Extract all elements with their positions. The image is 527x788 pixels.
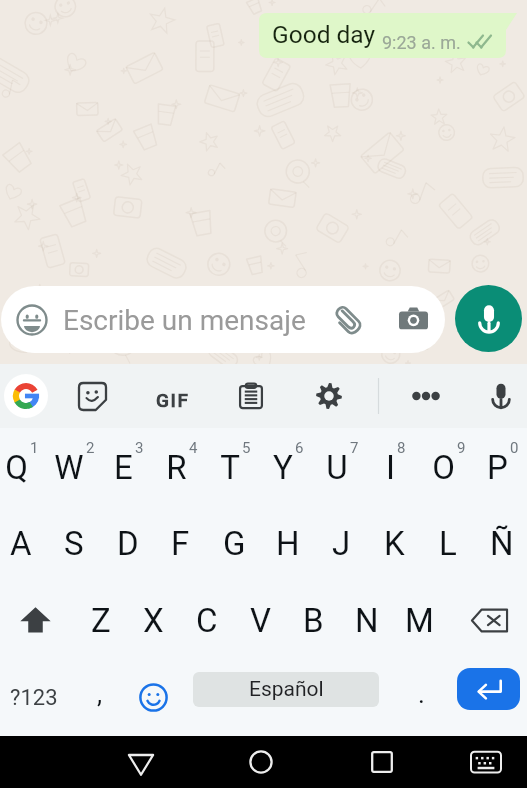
button[interactable]: Good day: [259, 13, 506, 58]
staticText: 1: [30, 439, 39, 457]
staticText: I: [386, 448, 395, 487]
button[interactable]: Google search: [4, 374, 48, 418]
staticText: 8: [397, 439, 406, 457]
staticText: D: [117, 524, 139, 563]
button[interactable]: Emoji: [127, 659, 179, 736]
button[interactable]: H: [261, 505, 314, 582]
button[interactable]: K: [368, 505, 421, 582]
button[interactable]: I: [368, 428, 421, 505]
button[interactable]: Hide keyboard: [462, 738, 510, 786]
staticText: H: [276, 524, 300, 563]
staticText: .: [418, 679, 425, 709]
button[interactable]: T: [208, 428, 261, 505]
button[interactable]: A: [0, 505, 47, 582]
staticText: Escribe un mensaje: [63, 304, 306, 337]
staticText: R: [166, 448, 187, 487]
button[interactable]: W: [47, 428, 100, 505]
staticText: C: [196, 601, 218, 640]
staticText: M: [405, 601, 434, 640]
button[interactable]: Ñ: [475, 505, 527, 582]
staticText: G: [223, 524, 246, 563]
staticText: W: [54, 448, 84, 487]
staticText: 5: [242, 439, 251, 457]
staticText: Español: [249, 677, 324, 702]
button[interactable]: Settings: [311, 378, 347, 414]
staticText: Z: [91, 601, 111, 640]
button[interactable]: Recent apps: [358, 738, 406, 786]
button[interactable]: GIF: [148, 378, 196, 426]
staticText: 2: [86, 439, 95, 457]
button[interactable]: Back: [117, 738, 165, 786]
staticText: V: [250, 601, 272, 640]
staticText: 9:23 a. m.: [382, 32, 461, 53]
staticText: Y: [273, 448, 293, 487]
button[interactable]: Attach: [324, 286, 370, 353]
button[interactable]: Enter: [457, 668, 520, 710]
button[interactable]: D: [101, 505, 154, 582]
staticText: O: [432, 448, 455, 487]
staticText: K: [384, 524, 405, 563]
button[interactable]: Backspace: [455, 582, 523, 659]
button[interactable]: Clipboard: [233, 378, 269, 414]
button[interactable]: Record voice message: [455, 285, 522, 352]
button[interactable]: R: [154, 428, 207, 505]
button[interactable]: E: [101, 428, 154, 505]
staticText: A: [10, 524, 32, 563]
button[interactable]: G: [208, 505, 261, 582]
button[interactable]: X: [127, 582, 180, 659]
staticText: B: [303, 601, 324, 640]
staticText: 4: [189, 439, 198, 457]
button[interactable]: L: [421, 505, 474, 582]
button[interactable]: Y: [261, 428, 314, 505]
button[interactable]: B: [287, 582, 340, 659]
button[interactable]: Home: [237, 738, 285, 786]
staticText: U: [326, 448, 348, 487]
button[interactable]: ?123: [0, 659, 68, 736]
button[interactable]: O: [421, 428, 474, 505]
button[interactable]: More options: [408, 378, 444, 414]
button[interactable]: Voice input: [483, 378, 519, 414]
staticText: J: [332, 524, 351, 563]
staticText: ?123: [10, 685, 58, 711]
staticText: Good day: [272, 20, 376, 49]
staticText: 0: [510, 439, 519, 457]
button[interactable]: Camera: [390, 286, 436, 353]
button[interactable]: C: [180, 582, 233, 659]
button[interactable]: .: [395, 659, 447, 736]
button[interactable]: Q: [0, 428, 47, 505]
staticText: P: [487, 448, 508, 487]
button[interactable]: S: [47, 505, 100, 582]
staticText: F: [171, 524, 190, 563]
button[interactable]: N: [340, 582, 393, 659]
button[interactable]: F: [154, 505, 207, 582]
button[interactable]: P: [475, 428, 527, 505]
staticText: T: [220, 448, 240, 487]
staticText: Ñ: [490, 524, 514, 563]
button[interactable]: U: [315, 428, 368, 505]
button[interactable]: Z: [74, 582, 127, 659]
button[interactable]: V: [234, 582, 287, 659]
button[interactable]: M: [393, 582, 446, 659]
staticText: Q: [5, 448, 28, 487]
staticText: N: [355, 601, 379, 640]
staticText: X: [143, 601, 164, 640]
button[interactable]: Shift: [0, 582, 70, 659]
button[interactable]: ,: [74, 659, 126, 736]
staticText: GIF: [156, 389, 190, 411]
staticText: E: [114, 448, 133, 487]
staticText: 9: [457, 439, 466, 457]
staticText: 3: [135, 439, 144, 457]
button[interactable]: Stickers: [74, 378, 110, 414]
button[interactable]: J: [315, 505, 368, 582]
staticText: L: [439, 524, 457, 563]
button[interactable]: Español: [193, 672, 379, 707]
staticText: ,: [97, 679, 103, 709]
staticText: 6: [295, 439, 304, 457]
button[interactable]: Emoji: [1, 286, 445, 353]
staticText: 7: [350, 439, 359, 457]
button[interactable]: Emoji: [9, 286, 55, 353]
staticText: S: [64, 524, 84, 563]
